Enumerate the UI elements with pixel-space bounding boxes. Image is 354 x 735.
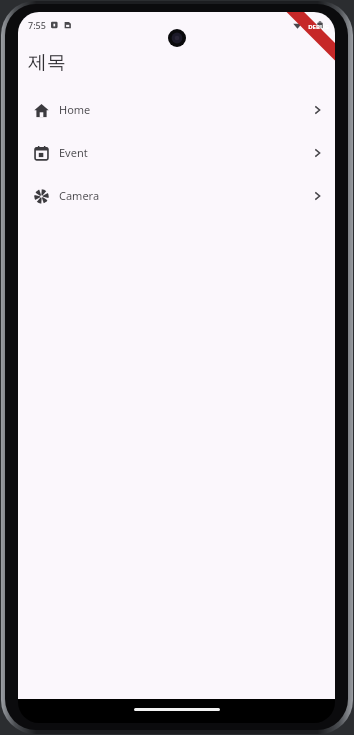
button[interactable]: Camera xyxy=(18,174,335,217)
staticText: Home xyxy=(59,102,91,117)
staticText: Event xyxy=(59,145,88,160)
staticText: 제목 xyxy=(28,51,66,75)
staticText: 7:55 xyxy=(28,19,46,31)
staticText: DEBUG xyxy=(308,23,329,31)
button[interactable]: Home xyxy=(18,88,335,131)
other: Debug banner xyxy=(273,12,335,74)
button[interactable]: Event xyxy=(18,131,335,174)
staticText: Camera xyxy=(59,188,100,203)
